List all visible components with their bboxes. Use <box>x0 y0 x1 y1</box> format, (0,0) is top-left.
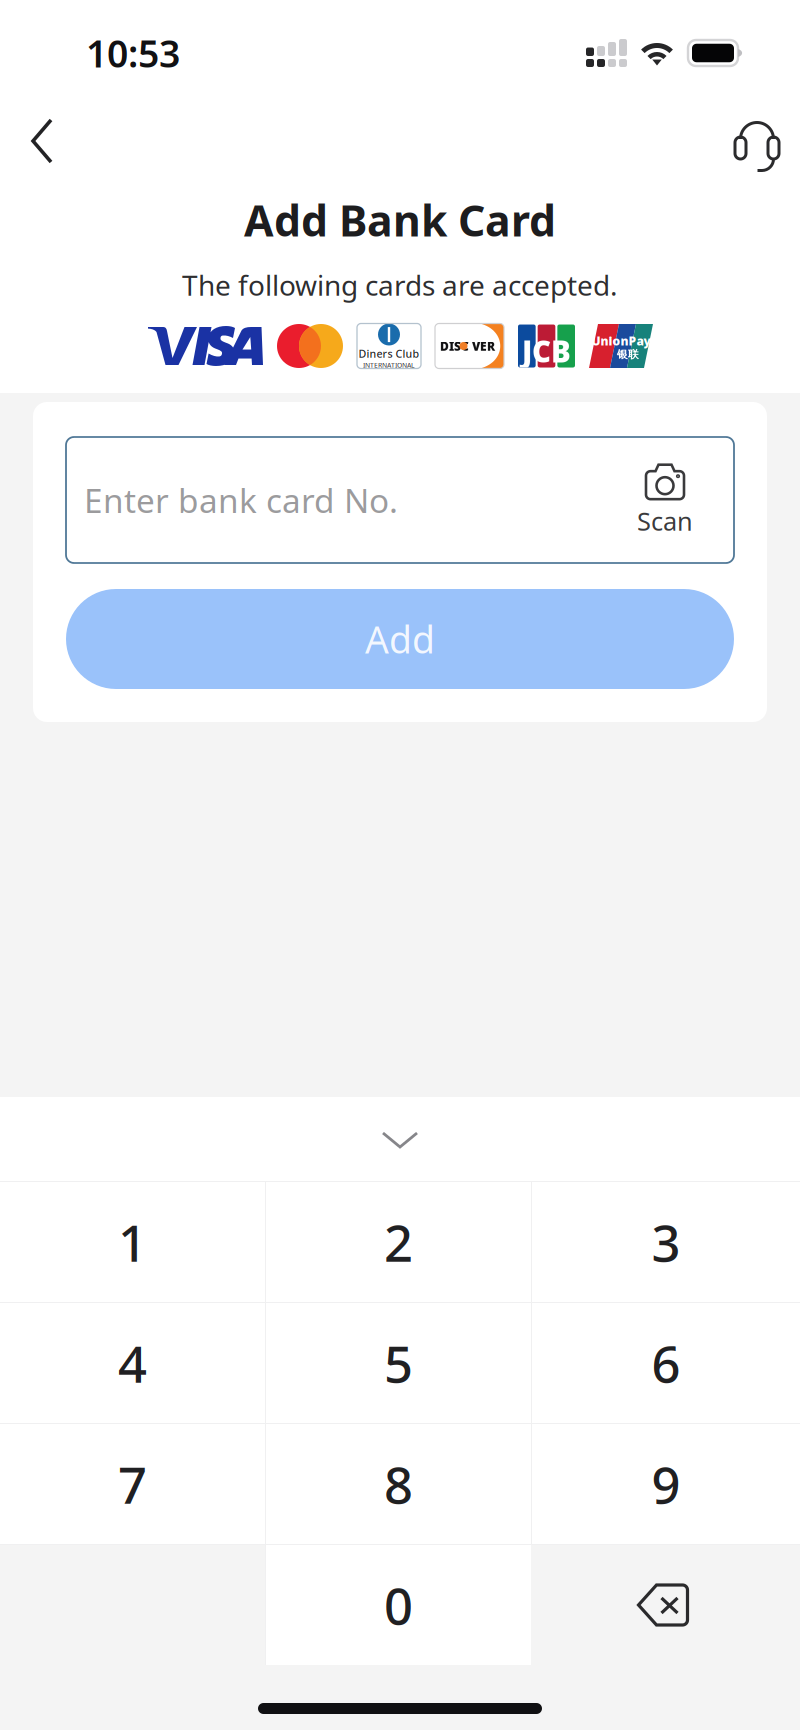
button[interactable]: 7 <box>0 1424 265 1544</box>
staticText: DISC VER <box>440 338 495 354</box>
button[interactable]: 1 <box>0 1182 265 1302</box>
button[interactable]: Add <box>66 589 734 689</box>
button[interactable]: 0 <box>266 1545 531 1665</box>
staticText: 0 <box>384 1571 413 1639</box>
button[interactable]: Hide keyboard <box>0 1097 800 1181</box>
staticText: 8 <box>384 1450 413 1518</box>
staticText: 7 <box>118 1450 147 1518</box>
staticText: 9 <box>651 1450 680 1518</box>
staticText: UnionPay <box>591 333 650 349</box>
button[interactable]: 3 <box>532 1182 800 1302</box>
button[interactable]: Back <box>12 110 74 172</box>
button[interactable]: Customer support <box>726 110 788 172</box>
staticText: 银联 <box>617 348 639 361</box>
button[interactable]: 4 <box>0 1303 265 1423</box>
staticText: Enter bank card No. <box>84 478 398 522</box>
staticText: JCB <box>522 331 571 370</box>
button[interactable]: Scan card <box>622 462 708 538</box>
staticText: Add <box>365 614 435 664</box>
staticText: INTERNATIONAL <box>363 361 415 370</box>
button[interactable]: 8 <box>266 1424 531 1544</box>
button[interactable]: 9 <box>532 1424 800 1544</box>
button[interactable]: 6 <box>532 1303 800 1423</box>
staticText: 6 <box>651 1329 680 1397</box>
button[interactable]: Delete <box>531 1545 800 1665</box>
staticText: 1 <box>118 1208 147 1276</box>
staticText: 5 <box>384 1329 413 1397</box>
staticText: Scan <box>637 504 693 538</box>
staticText: 2 <box>384 1208 413 1276</box>
staticText: 3 <box>651 1208 680 1276</box>
staticText: 4 <box>118 1329 147 1397</box>
button[interactable]: 2 <box>266 1182 531 1302</box>
staticText: The following cards are accepted. <box>182 266 618 304</box>
staticText: Diners Club <box>358 346 419 361</box>
staticText: 10:53 <box>86 28 180 78</box>
staticText: Add Bank Card <box>244 192 556 248</box>
button[interactable]: 5 <box>266 1303 531 1423</box>
